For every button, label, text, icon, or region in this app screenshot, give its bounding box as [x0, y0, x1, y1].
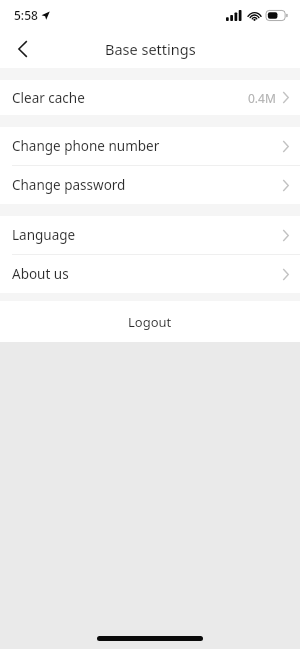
staticText: 5:58	[14, 7, 38, 23]
button[interactable]: Logout	[0, 301, 300, 342]
button[interactable]: About us	[0, 255, 300, 293]
staticText: 0.4M	[248, 90, 276, 106]
button[interactable]: Change phone number	[0, 127, 300, 165]
button[interactable]: Back	[0, 30, 44, 68]
staticText: Change password	[12, 176, 126, 194]
staticText: Clear cache	[12, 89, 85, 107]
staticText: Logout	[128, 313, 172, 331]
staticText: Change phone number	[12, 137, 160, 155]
staticText: About us	[12, 265, 69, 283]
staticText: Language	[12, 226, 76, 244]
button[interactable]: Language	[0, 216, 300, 254]
button[interactable]: Change password	[0, 166, 300, 204]
staticText: Base settings	[105, 39, 196, 59]
button[interactable]: Clear cache	[0, 80, 300, 115]
